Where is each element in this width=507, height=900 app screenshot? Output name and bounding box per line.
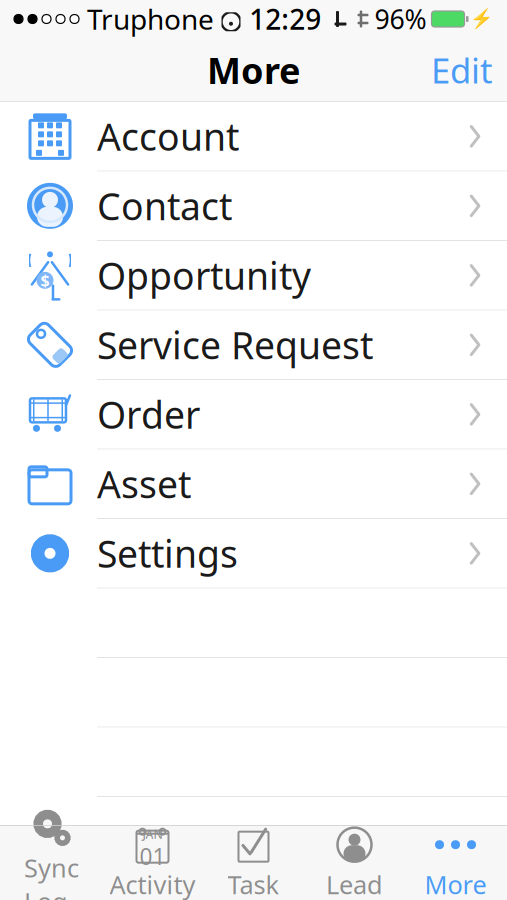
- staticText: More: [424, 868, 486, 900]
- staticText: Activity: [109, 868, 195, 900]
- staticText: 01: [139, 841, 165, 871]
- button[interactable]: Edit: [417, 37, 507, 103]
- button[interactable]: Asset: [0, 449, 507, 519]
- staticText: JAN: [142, 826, 162, 842]
- staticText: Asset: [97, 459, 191, 509]
- staticText: Service Request: [97, 320, 373, 370]
- staticText: Lead: [326, 868, 383, 900]
- button[interactable]: $: [0, 241, 507, 310]
- button[interactable]: Account: [0, 102, 507, 171]
- staticText: Task: [227, 868, 279, 900]
- button[interactable]: Contact: [0, 171, 507, 241]
- staticText: 12:29: [249, 0, 321, 38]
- staticText: Edit: [431, 47, 493, 93]
- button[interactable]: Service Request: [0, 310, 507, 380]
- staticText: Order: [97, 390, 200, 439]
- button[interactable]: Lead: [304, 825, 405, 900]
- staticText: Truphone: [87, 0, 214, 38]
- button[interactable]: More: [405, 825, 506, 900]
- staticText: Settings: [97, 529, 238, 578]
- staticText: Opportunity: [97, 251, 311, 300]
- button[interactable]: Task: [203, 825, 304, 900]
- button[interactable]: Sync Log: [1, 825, 102, 900]
- staticText: More: [207, 46, 300, 94]
- button[interactable]: JAN: [102, 825, 203, 900]
- staticText: Sync Log: [24, 851, 79, 900]
- button[interactable]: Order: [0, 380, 507, 449]
- staticText: ⚡: [470, 8, 493, 30]
- button[interactable]: Settings: [0, 519, 507, 588]
- staticText: $: [40, 270, 49, 291]
- staticText: Contact: [97, 181, 232, 231]
- staticText: 96%: [374, 1, 426, 37]
- staticText: Account: [97, 112, 239, 161]
